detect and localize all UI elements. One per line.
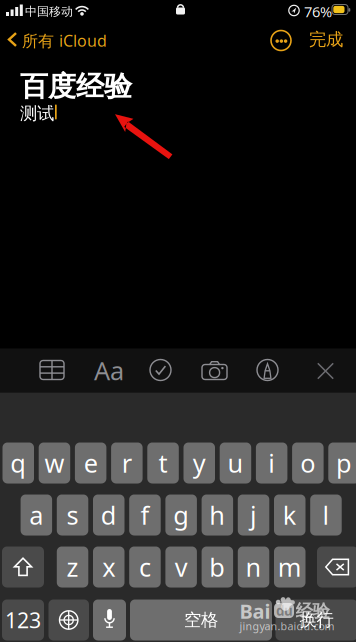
button[interactable]: 空格 bbox=[130, 599, 272, 640]
staticText: k bbox=[283, 498, 297, 532]
button[interactable]: d bbox=[93, 494, 124, 535]
button[interactable]: Camera bbox=[202, 360, 227, 379]
staticText: b bbox=[209, 550, 225, 584]
staticText: g bbox=[173, 498, 189, 532]
button[interactable]: h bbox=[202, 494, 233, 535]
staticText: Aa bbox=[94, 354, 124, 387]
button[interactable]: q bbox=[2, 442, 34, 483]
staticText: j bbox=[250, 498, 257, 532]
button[interactable]: i bbox=[256, 442, 287, 483]
button[interactable]: Delete bbox=[317, 546, 356, 587]
staticText: 百度经验 bbox=[20, 69, 132, 104]
staticText: 中国移动 bbox=[25, 4, 73, 19]
staticText: n bbox=[246, 550, 262, 584]
staticText: c bbox=[139, 550, 151, 584]
staticText: 完成 bbox=[309, 29, 343, 50]
button[interactable]: k bbox=[274, 494, 305, 535]
staticText: m bbox=[278, 550, 302, 584]
staticText: 123 bbox=[5, 606, 41, 634]
staticText: q bbox=[10, 446, 26, 480]
button[interactable]: u bbox=[220, 442, 251, 483]
button[interactable]: Switch keyboard bbox=[48, 599, 89, 640]
staticText: z bbox=[66, 550, 78, 584]
staticText: x bbox=[102, 550, 115, 584]
button[interactable]: w bbox=[39, 442, 70, 483]
staticText: 测试 bbox=[20, 103, 54, 124]
button[interactable]: t bbox=[147, 442, 179, 483]
staticText: du bbox=[276, 602, 293, 619]
button[interactable]: a bbox=[21, 494, 52, 535]
staticText: 经验 bbox=[295, 600, 329, 622]
button[interactable]: Markup bbox=[257, 359, 278, 380]
staticText: v bbox=[175, 550, 188, 584]
staticText: e bbox=[84, 446, 98, 480]
staticText: t bbox=[159, 446, 168, 480]
staticText: 76% bbox=[304, 2, 332, 21]
staticText: u bbox=[227, 446, 243, 480]
button[interactable]: v bbox=[165, 546, 197, 587]
staticText: o bbox=[300, 446, 315, 480]
staticText: d bbox=[101, 498, 117, 532]
button[interactable]: y bbox=[183, 442, 215, 483]
button[interactable]: f bbox=[129, 494, 161, 535]
button[interactable]: Dictate bbox=[93, 599, 126, 640]
staticText: y bbox=[193, 446, 206, 480]
staticText: h bbox=[209, 498, 225, 532]
button[interactable]: Text format bbox=[94, 358, 124, 382]
staticText: f bbox=[140, 498, 149, 532]
staticText: jingyan.baidu.com bbox=[239, 619, 334, 633]
staticText: a bbox=[29, 498, 43, 532]
button[interactable]: 所有 iCloud bbox=[0, 23, 110, 55]
button[interactable]: 123 bbox=[2, 599, 44, 640]
button[interactable]: l bbox=[310, 494, 342, 535]
button[interactable]: Close bbox=[317, 362, 334, 379]
staticText: Bai bbox=[239, 598, 270, 624]
button[interactable]: 完成 bbox=[302, 26, 350, 52]
staticText: 换行 bbox=[299, 609, 333, 631]
staticText: l bbox=[322, 498, 329, 532]
button[interactable]: e bbox=[75, 442, 106, 483]
button[interactable]: 换行 bbox=[275, 599, 356, 640]
button[interactable]: m bbox=[274, 546, 305, 587]
button[interactable]: b bbox=[202, 546, 233, 587]
staticText: r bbox=[122, 446, 132, 480]
button[interactable]: x bbox=[93, 546, 124, 587]
button[interactable]: p bbox=[328, 442, 356, 483]
button[interactable]: c bbox=[129, 546, 161, 587]
button[interactable]: Shift bbox=[2, 546, 44, 587]
staticText: 所有 iCloud bbox=[22, 30, 107, 51]
button[interactable]: g bbox=[165, 494, 197, 535]
button[interactable]: s bbox=[57, 494, 88, 535]
button[interactable]: j bbox=[238, 494, 269, 535]
button[interactable]: r bbox=[111, 442, 143, 483]
button[interactable]: More bbox=[270, 29, 292, 51]
button[interactable]: z bbox=[57, 546, 88, 587]
button[interactable]: Checklist bbox=[150, 359, 171, 380]
staticText: w bbox=[44, 446, 64, 480]
button[interactable]: n bbox=[238, 546, 269, 587]
staticText: s bbox=[67, 498, 79, 532]
staticText: p bbox=[336, 446, 352, 480]
button[interactable]: o bbox=[292, 442, 324, 483]
staticText: i bbox=[268, 446, 275, 480]
staticText: 空格 bbox=[184, 609, 218, 631]
button[interactable]: Table bbox=[40, 360, 64, 379]
